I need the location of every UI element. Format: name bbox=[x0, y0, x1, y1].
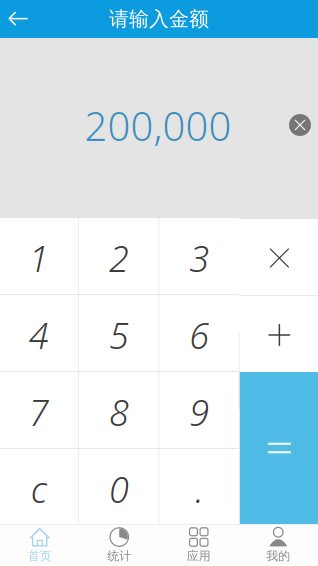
staticText: c bbox=[31, 465, 47, 513]
staticText: 9 bbox=[189, 388, 209, 436]
staticText: 请输入金额 bbox=[109, 7, 209, 31]
staticText: 4 bbox=[29, 311, 49, 359]
button[interactable]: 2 bbox=[79, 218, 158, 294]
staticText: 首页 bbox=[28, 548, 52, 563]
button[interactable]: Clear bbox=[285, 110, 315, 140]
staticText: 3 bbox=[189, 234, 209, 282]
button[interactable]: 我的 bbox=[238, 524, 318, 566]
staticText: 我的 bbox=[266, 548, 290, 563]
button[interactable]: 应用 bbox=[159, 524, 238, 566]
button[interactable]: 统计 bbox=[79, 524, 159, 566]
button[interactable]: . bbox=[159, 449, 239, 525]
staticText: 应用 bbox=[187, 548, 211, 563]
button[interactable]: c bbox=[0, 449, 78, 525]
staticText: 6 bbox=[189, 311, 209, 359]
staticText: 统计 bbox=[107, 548, 131, 563]
button[interactable]: Equals bbox=[240, 372, 318, 524]
button[interactable]: 0 bbox=[79, 449, 158, 525]
button[interactable]: 5 bbox=[79, 295, 158, 371]
staticText: . bbox=[195, 465, 203, 513]
button[interactable]: Multiply bbox=[240, 219, 318, 295]
staticText: 0 bbox=[109, 465, 129, 513]
staticText: 200,000 bbox=[84, 99, 231, 152]
button[interactable]: 9 bbox=[159, 372, 239, 448]
button[interactable]: 4 bbox=[0, 295, 78, 371]
button[interactable]: 首页 bbox=[0, 524, 79, 566]
button[interactable]: 8 bbox=[79, 372, 158, 448]
button[interactable]: 6 bbox=[159, 295, 239, 371]
button[interactable]: 3 bbox=[159, 218, 239, 294]
button[interactable]: 1 bbox=[0, 218, 78, 294]
staticText: 1 bbox=[29, 234, 49, 282]
button[interactable]: Plus bbox=[240, 296, 318, 372]
staticText: 8 bbox=[109, 388, 129, 436]
button[interactable]: Back bbox=[0, 0, 36, 38]
staticText: 7 bbox=[29, 388, 49, 436]
staticText: 5 bbox=[109, 311, 129, 359]
staticText: 2 bbox=[109, 234, 129, 282]
button[interactable]: 7 bbox=[0, 372, 78, 448]
